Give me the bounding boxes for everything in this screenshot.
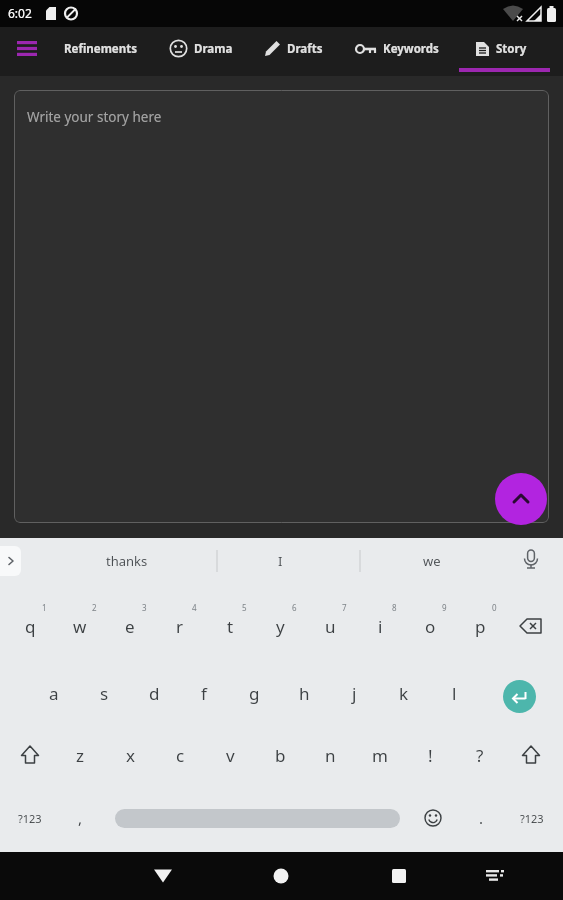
staticText: Write your story here bbox=[27, 108, 162, 126]
staticText: k bbox=[399, 682, 409, 705]
button[interactable] bbox=[409, 795, 457, 841]
staticText: 0 bbox=[492, 602, 497, 613]
button[interactable]: q bbox=[6, 603, 54, 649]
button[interactable]: . bbox=[457, 795, 505, 841]
button[interactable]: y bbox=[256, 603, 304, 649]
staticText: f bbox=[201, 682, 207, 705]
button[interactable]: d bbox=[130, 670, 178, 716]
staticText: d bbox=[149, 682, 160, 705]
staticText: we bbox=[423, 552, 441, 570]
button[interactable]: Drama bbox=[169, 27, 233, 70]
button[interactable]: c bbox=[156, 732, 204, 778]
staticText: 5 bbox=[242, 602, 247, 613]
staticText: t bbox=[227, 615, 234, 638]
button[interactable]: Refinements bbox=[64, 27, 137, 70]
button[interactable]: g bbox=[230, 670, 278, 716]
staticText: , bbox=[78, 808, 83, 828]
button[interactable]: w bbox=[56, 603, 104, 649]
button[interactable]: ?123 bbox=[6, 795, 54, 841]
button[interactable] bbox=[115, 809, 400, 828]
button[interactable]: ?123 bbox=[508, 795, 556, 841]
button[interactable]: b bbox=[256, 732, 304, 778]
staticText: ?123 bbox=[18, 811, 42, 826]
staticText: n bbox=[325, 744, 336, 767]
button[interactable]: Story bbox=[475, 27, 527, 70]
button[interactable] bbox=[375, 852, 423, 900]
button[interactable]: ? bbox=[456, 732, 504, 778]
staticText: h bbox=[299, 682, 310, 705]
button[interactable]: r bbox=[156, 603, 204, 649]
staticText: m bbox=[372, 744, 388, 767]
button[interactable]: j bbox=[330, 670, 378, 716]
button[interactable]: x bbox=[106, 732, 154, 778]
staticText: 2 bbox=[92, 602, 97, 613]
button[interactable] bbox=[12, 33, 42, 63]
staticText: Refinements bbox=[64, 41, 137, 57]
button[interactable] bbox=[0, 546, 21, 576]
staticText: v bbox=[226, 744, 235, 767]
staticText: 6 bbox=[292, 602, 297, 613]
button[interactable]: Write your story here bbox=[14, 90, 549, 523]
staticText: b bbox=[275, 744, 286, 767]
button[interactable] bbox=[503, 680, 536, 713]
button[interactable]: Keywords bbox=[355, 27, 439, 70]
button[interactable]: z bbox=[56, 732, 104, 778]
button[interactable]: e bbox=[106, 603, 154, 649]
staticText: Drama bbox=[194, 41, 233, 57]
staticText: q bbox=[25, 615, 36, 638]
button[interactable]: k bbox=[380, 670, 428, 716]
staticText: r bbox=[176, 615, 184, 638]
staticText: y bbox=[276, 615, 285, 638]
staticText: u bbox=[325, 615, 336, 638]
button[interactable] bbox=[495, 473, 547, 525]
staticText: s bbox=[100, 682, 109, 705]
button[interactable]: l bbox=[430, 670, 478, 716]
button[interactable]: thanks bbox=[67, 538, 187, 584]
staticText: c bbox=[176, 744, 185, 767]
button[interactable]: Drafts bbox=[264, 27, 323, 70]
button[interactable]: f bbox=[180, 670, 228, 716]
button[interactable]: m bbox=[356, 732, 404, 778]
staticText: z bbox=[76, 744, 84, 767]
staticText: Drafts bbox=[287, 41, 323, 57]
button[interactable] bbox=[471, 852, 519, 900]
button[interactable]: h bbox=[280, 670, 328, 716]
button[interactable] bbox=[257, 852, 305, 900]
button[interactable]: n bbox=[306, 732, 354, 778]
staticText: o bbox=[425, 615, 436, 638]
button[interactable]: a bbox=[30, 670, 78, 716]
button[interactable]: v bbox=[206, 732, 254, 778]
staticText: 3 bbox=[142, 602, 147, 613]
button[interactable]: u bbox=[306, 603, 354, 649]
button[interactable]: I bbox=[220, 538, 340, 584]
button[interactable]: , bbox=[56, 795, 104, 841]
staticText: . bbox=[479, 808, 484, 828]
staticText: Story bbox=[496, 41, 527, 57]
staticText: Keywords bbox=[383, 41, 439, 57]
staticText: 6:02 bbox=[8, 5, 32, 21]
button[interactable] bbox=[139, 852, 187, 900]
staticText: I bbox=[278, 552, 283, 570]
staticText: l bbox=[452, 682, 457, 705]
button[interactable]: we bbox=[372, 538, 492, 584]
staticText: a bbox=[49, 682, 59, 705]
staticText: p bbox=[475, 615, 486, 638]
staticText: g bbox=[249, 682, 260, 705]
staticText: thanks bbox=[106, 552, 148, 570]
staticText: 9 bbox=[442, 602, 447, 613]
staticText: i bbox=[378, 615, 383, 638]
staticText: 7 bbox=[342, 602, 347, 613]
button[interactable]: s bbox=[80, 670, 128, 716]
staticText: ?123 bbox=[520, 811, 544, 826]
staticText: 8 bbox=[392, 602, 397, 613]
staticText: 1 bbox=[42, 602, 47, 613]
staticText: e bbox=[125, 615, 135, 638]
staticText: j bbox=[352, 682, 357, 705]
button[interactable]: p bbox=[456, 603, 504, 649]
staticText: ! bbox=[428, 744, 433, 767]
button[interactable]: ! bbox=[406, 732, 454, 778]
button[interactable]: t bbox=[206, 603, 254, 649]
staticText: w bbox=[73, 615, 87, 638]
button[interactable]: o bbox=[406, 603, 454, 649]
button[interactable]: i bbox=[356, 603, 404, 649]
